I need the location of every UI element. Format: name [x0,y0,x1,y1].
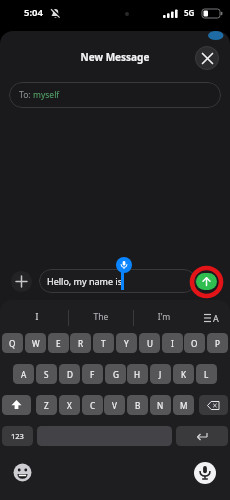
staticText: Hello, my name is [47,275,123,287]
button[interactable] [195,46,219,70]
staticText: X [67,400,72,411]
button[interactable]: R [70,333,91,353]
staticText: U [147,338,153,349]
staticText: H [134,369,141,380]
staticText: A [213,312,219,324]
button[interactable]: Z [36,395,57,415]
staticText: B [135,400,141,411]
staticText: 5:04 [24,6,43,19]
button[interactable]: Hello, my name is [39,269,196,293]
button[interactable] [194,462,216,484]
button[interactable]: V [104,395,125,415]
staticText: 5G [184,7,195,18]
staticText: I [20,311,54,323]
staticText: 123 [11,431,24,441]
staticText: M [180,400,188,411]
button[interactable]: M [173,395,194,415]
staticText: O [191,338,198,349]
staticText: Y [124,338,129,349]
staticText: The [84,311,118,323]
staticText: R [78,338,84,349]
button[interactable]: Y [116,333,137,353]
button[interactable]: D [59,364,80,384]
staticText: P [215,338,220,349]
button[interactable]: 123 [2,426,33,446]
button[interactable] [176,426,228,446]
staticText: I [171,338,174,349]
staticText: T [101,338,106,349]
button[interactable]: G [105,364,126,384]
staticText: N [157,400,164,411]
button[interactable]: K [173,364,194,384]
button[interactable]: X [59,395,80,415]
button[interactable]: S [36,364,57,384]
staticText: G [113,369,119,380]
button[interactable] [196,273,217,290]
staticText: New Message [0,50,230,64]
button[interactable]: C [82,395,103,415]
button[interactable]: To: [9,82,221,108]
button[interactable] [199,395,228,415]
button[interactable]: N [150,395,171,415]
button[interactable]: W [25,333,46,353]
staticText: W [32,338,40,349]
button[interactable]: P [207,333,228,353]
button[interactable]: I [162,333,183,353]
staticText: Q [9,338,16,349]
button[interactable]: A [13,364,34,384]
button[interactable]: L [196,364,217,384]
staticText: A [21,369,27,380]
staticText: D [67,369,73,380]
button[interactable]: J [150,364,171,384]
button[interactable] [11,271,32,292]
button[interactable]: O [184,333,205,353]
staticText: I'm [147,311,181,323]
staticText: V [112,400,117,411]
staticText: C [90,400,96,411]
staticText: K [181,369,187,380]
button[interactable] [2,395,31,415]
button[interactable]: U [139,333,160,353]
button[interactable]: H [127,364,148,384]
button[interactable] [13,463,32,482]
staticText: myself [33,89,60,101]
button[interactable]: Q [2,333,23,353]
button[interactable]: F [82,364,103,384]
staticText: J [159,369,162,380]
staticText: Z [44,400,49,411]
staticText: F [90,369,95,380]
staticText: L [204,369,209,380]
staticText: To: [19,89,33,101]
button[interactable]: B [127,395,148,415]
staticText: S [44,369,49,380]
button[interactable]: T [93,333,114,353]
staticText: E [56,338,61,349]
button[interactable]: E [48,333,69,353]
